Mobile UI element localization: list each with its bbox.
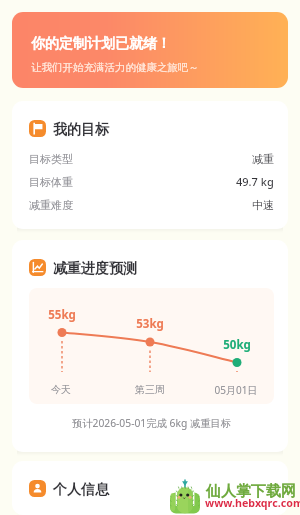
staticText: 目标体重 xyxy=(29,175,73,189)
staticText: 今天 xyxy=(31,383,91,396)
staticText: 个人信息 xyxy=(53,481,109,499)
other: Progress chart xyxy=(29,259,46,276)
staticText: 让我们开始充满活力的健康之旅吧～ xyxy=(31,61,199,74)
staticText: 50kg xyxy=(207,337,267,353)
staticText: 预计2026-05-01完成 6kg 减重目标 xyxy=(29,416,274,430)
staticText: 53kg xyxy=(120,316,180,332)
staticText: 目标类型 xyxy=(29,152,73,166)
staticText: 减重难度 xyxy=(29,198,73,212)
staticText: 仙人掌下载网 xyxy=(206,482,296,501)
button[interactable]: 目标体重 xyxy=(29,170,274,193)
button[interactable]: Personal info xyxy=(29,479,274,497)
staticText: 减重进度预测 xyxy=(53,260,137,278)
button[interactable]: 你的定制计划已就绪！ xyxy=(12,12,288,88)
staticText: 49.7 kg xyxy=(236,174,274,189)
other: Goal xyxy=(29,120,46,137)
staticText: 55kg xyxy=(32,307,92,323)
other: Personal info xyxy=(29,480,46,497)
staticText: 05月01日 xyxy=(206,383,266,397)
staticText: 减重 xyxy=(252,152,274,166)
staticText: 你的定制计划已就绪！ xyxy=(31,35,171,53)
staticText: 第三周 xyxy=(120,383,180,396)
button[interactable]: 减重难度 xyxy=(29,193,274,216)
button[interactable]: Progress chart xyxy=(29,258,274,276)
staticText: 中速 xyxy=(252,198,274,212)
staticText: www.hebxqrc.com xyxy=(205,496,300,511)
staticText: 我的目标 xyxy=(53,121,109,139)
button[interactable]: Goal xyxy=(29,119,274,137)
button[interactable]: 目标类型 xyxy=(29,147,274,170)
